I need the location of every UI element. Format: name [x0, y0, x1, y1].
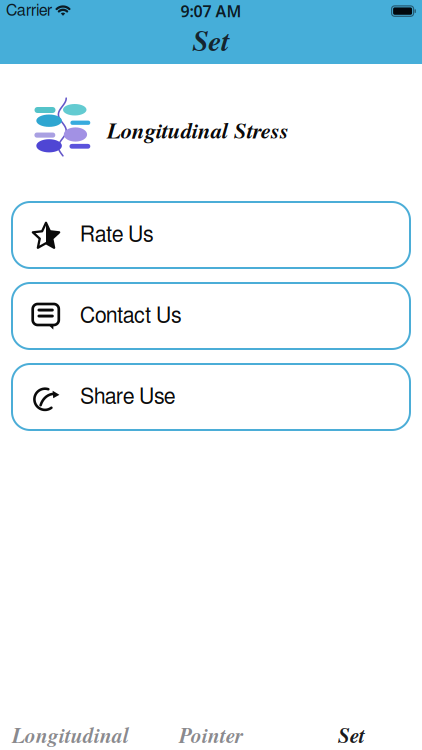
button[interactable]: Contact Us — [12, 283, 410, 349]
button[interactable]: Rate Us — [12, 202, 410, 268]
button[interactable]: Set — [281, 721, 422, 749]
staticText: 9:07 AM — [180, 0, 241, 22]
button[interactable]: Pointer — [141, 721, 281, 749]
staticText: Set — [338, 720, 365, 750]
button[interactable]: Share Use — [12, 364, 410, 430]
staticText: Pointer — [179, 720, 243, 750]
staticText: Contact Us — [80, 305, 182, 327]
staticText: Rate Us — [80, 224, 154, 246]
staticText: Set — [192, 19, 229, 61]
staticText: Longitudinal — [12, 720, 129, 750]
staticText: Carrier — [6, 3, 52, 19]
staticText: Longitudinal Stress — [107, 114, 289, 146]
button[interactable]: Longitudinal — [0, 721, 141, 749]
staticText: Share Use — [80, 386, 175, 408]
